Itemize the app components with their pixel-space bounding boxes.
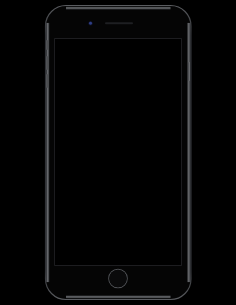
button[interactable]: iPhone device preview [0,0,236,305]
